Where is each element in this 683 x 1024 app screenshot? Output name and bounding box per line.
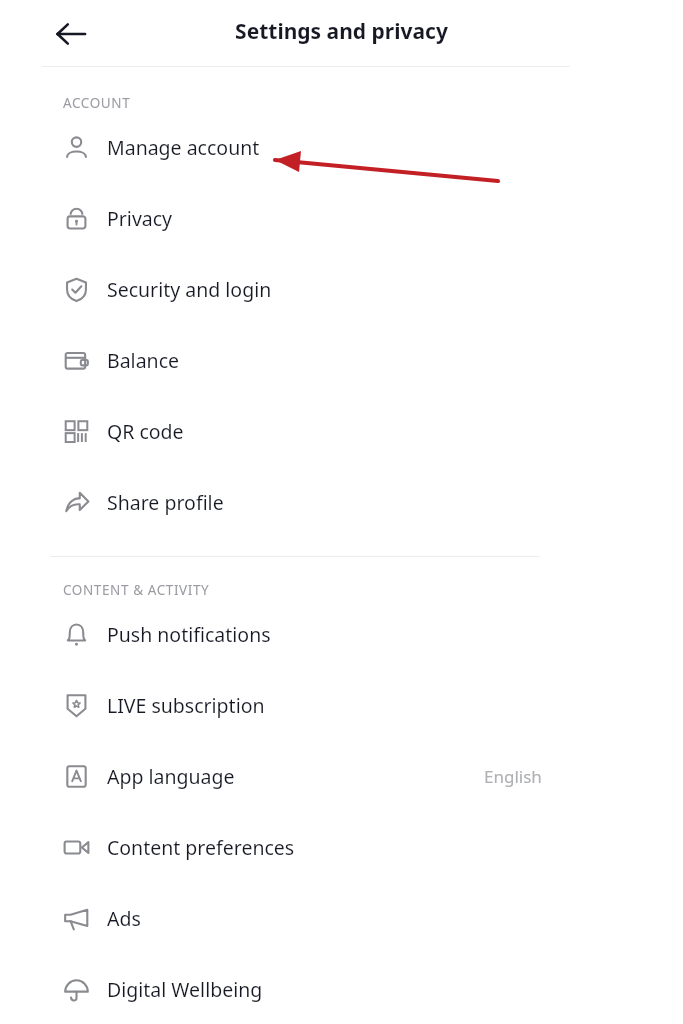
staticText: English bbox=[484, 765, 542, 788]
staticText: App language bbox=[107, 763, 235, 790]
button[interactable]: Privacy bbox=[0, 183, 683, 254]
staticText: Manage account bbox=[107, 134, 260, 161]
button[interactable]: Balance bbox=[0, 325, 683, 396]
staticText: Privacy bbox=[107, 205, 173, 232]
staticText: Ads bbox=[107, 905, 141, 932]
staticText: Settings and privacy bbox=[235, 17, 448, 46]
staticText: Push notifications bbox=[107, 621, 271, 648]
button[interactable]: Ads bbox=[0, 883, 683, 954]
staticText: Content preferences bbox=[107, 834, 295, 861]
button[interactable]: Security and login bbox=[0, 254, 683, 325]
staticText: CONTENT & ACTIVITY bbox=[63, 581, 210, 599]
button[interactable]: Share profile bbox=[0, 467, 683, 538]
button[interactable]: Back bbox=[47, 10, 95, 58]
staticText: Security and login bbox=[107, 276, 272, 303]
button[interactable]: Digital Wellbeing bbox=[0, 954, 683, 1024]
button[interactable]: QR code bbox=[0, 396, 683, 467]
staticText: QR code bbox=[107, 418, 184, 445]
staticText: Digital Wellbeing bbox=[107, 976, 263, 1003]
staticText: LIVE subscription bbox=[107, 692, 265, 719]
staticText: ACCOUNT bbox=[63, 94, 131, 112]
button[interactable]: Push notifications bbox=[0, 599, 683, 670]
staticText: Share profile bbox=[107, 489, 224, 516]
button[interactable]: Manage account bbox=[0, 112, 683, 183]
staticText: Balance bbox=[107, 347, 179, 374]
button[interactable]: Content preferences bbox=[0, 812, 683, 883]
button[interactable]: App language bbox=[0, 741, 683, 812]
button[interactable]: LIVE subscription bbox=[0, 670, 683, 741]
